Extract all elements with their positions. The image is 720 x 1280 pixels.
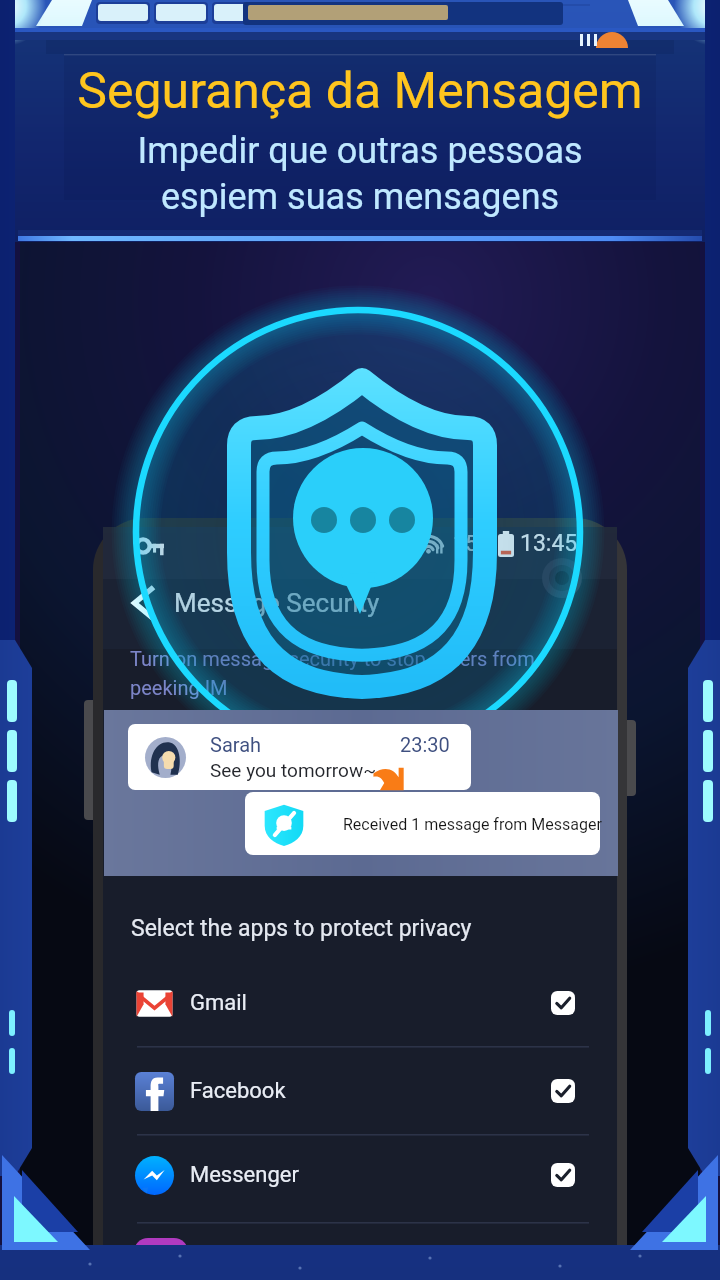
button[interactable]: Back — [120, 580, 166, 626]
staticText: Received 1 message from Messager — [343, 815, 602, 834]
staticText: Messenger — [190, 1162, 299, 1188]
staticText: Select the apps to protect privacy — [131, 915, 472, 942]
staticText: Sarah — [210, 733, 262, 756]
button[interactable]: Sarah — [128, 724, 471, 790]
button[interactable]: Facebook — [103, 1047, 618, 1135]
staticText: Turn on message security to stop others … — [130, 647, 600, 729]
other: Gmail selected — [551, 991, 575, 1015]
staticText: Message Security — [174, 588, 380, 618]
staticText: Facebook — [190, 1078, 286, 1104]
staticText: 23:30 — [400, 733, 450, 756]
staticText: 15% — [453, 531, 494, 557]
staticText: Segurança da Mensagem — [77, 62, 643, 121]
other: Facebook selected — [551, 1079, 575, 1103]
staticText: 13:45 — [520, 530, 578, 557]
other: Messenger selected — [551, 1163, 575, 1187]
button[interactable]: Gmail — [103, 959, 618, 1047]
staticText: Impedir que outras pessoas espiem suas m… — [137, 130, 583, 218]
staticText: Gmail — [190, 990, 247, 1016]
button[interactable]: Messenger — [103, 1131, 618, 1219]
button[interactable]: Received 1 message from Messager — [245, 792, 603, 856]
staticText: See you tomorrow~ — [210, 759, 377, 781]
